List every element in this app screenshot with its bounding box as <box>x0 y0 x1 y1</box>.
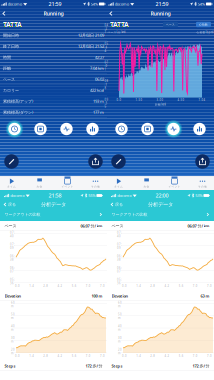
staticText: 07:01 <box>104 61 108 71</box>
staticText: 5.6 <box>72 354 77 358</box>
staticText: 7.0 <box>193 354 198 358</box>
staticText: 60 m <box>118 301 122 308</box>
staticText: 05:36 <box>117 278 122 285</box>
staticText: 開始日時 <box>3 33 19 38</box>
staticText: ワークアウトの比較 <box>111 212 147 217</box>
button[interactable]: タイム <box>0 176 25 190</box>
staticText: 05:44 <box>104 42 108 53</box>
staticText: 07:09 <box>117 243 122 250</box>
staticText: 172 歩/分 <box>192 363 209 368</box>
staticText: 7.04 <box>198 98 205 102</box>
button[interactable]: その他 <box>188 176 214 190</box>
staticText: 4.2 <box>164 284 169 288</box>
button[interactable]: Analysis <box>190 120 208 138</box>
staticText: 距離(km) <box>155 103 166 106</box>
staticText: ペース(分/km) <box>107 30 125 34</box>
staticText: 7.0 <box>100 354 105 358</box>
staticText: ペース <box>3 77 15 82</box>
staticText: 7.0 <box>207 354 212 358</box>
staticText: 0.0 <box>122 284 127 288</box>
button[interactable]: タイム <box>104 176 132 190</box>
button[interactable]: Graph <box>57 120 75 138</box>
staticText: 7.0 <box>86 284 91 288</box>
button[interactable]: Back <box>104 8 117 19</box>
staticText: 422 kcal <box>90 88 104 93</box>
staticText: 54% <box>91 1 98 7</box>
staticText: 大会 <box>143 185 149 188</box>
staticText: 172 歩/分 <box>85 363 102 368</box>
staticText: 07:40 <box>117 231 122 238</box>
staticText: 55% <box>88 193 95 198</box>
staticText: docomo <box>117 193 131 198</box>
button[interactable]: イベント <box>160 176 188 190</box>
staticText: 42:27 <box>95 55 104 60</box>
staticText: 12月02日 21:09 <box>78 33 104 38</box>
staticText: 21:59 <box>156 0 169 8</box>
button[interactable]: 戻る <box>107 199 126 209</box>
staticText: 177 m <box>93 110 104 115</box>
staticText: 0.0 <box>116 98 121 102</box>
staticText: 100 m <box>91 293 102 298</box>
staticText: 1.50 <box>135 98 142 102</box>
button[interactable]: Splits <box>31 120 49 138</box>
staticText: 22:00 <box>156 192 169 199</box>
staticText: 06:07 <box>117 266 122 273</box>
staticText: 60 m <box>11 301 15 308</box>
staticText: 193 m <box>93 99 104 104</box>
button[interactable]: 大会 <box>25 176 53 190</box>
button[interactable]: ワークアウトの比較 <box>0 209 107 219</box>
staticText: 1.4 <box>29 284 34 288</box>
staticText: その他 <box>198 185 207 188</box>
staticText: 1.4 <box>29 354 34 358</box>
button[interactable]: その他 <box>81 176 109 190</box>
staticText: TATTA <box>110 20 129 29</box>
staticText: 大会 <box>36 185 42 188</box>
staticText: 06:02 <box>95 77 104 82</box>
button[interactable]: 戻る <box>0 199 19 209</box>
staticText: 戻る <box>115 202 123 207</box>
button[interactable]: Share <box>88 154 103 169</box>
button[interactable]: Edit <box>4 154 19 169</box>
staticText: 07:09 <box>10 243 15 250</box>
button[interactable]: 大会 <box>132 176 160 190</box>
staticText: docomo <box>10 193 24 198</box>
staticText: 分析データ <box>148 201 173 208</box>
staticText: 40 m <box>11 324 15 332</box>
staticText: 距離 <box>3 66 11 71</box>
staticText: 20 m <box>118 348 122 355</box>
staticText: 時間 <box>3 55 11 60</box>
staticText: 21:58 <box>49 192 62 199</box>
staticText: 63 m <box>200 293 209 298</box>
button[interactable]: Edit <box>111 154 126 169</box>
staticText: 20 m <box>11 348 15 355</box>
staticText: 4.2 <box>57 284 62 288</box>
button[interactable]: イベント <box>53 176 81 190</box>
button[interactable]: Share <box>195 154 210 169</box>
staticText: 7.04 km <box>90 66 104 71</box>
staticText: 7.0 <box>193 284 198 288</box>
staticText: 0.0 <box>122 354 127 358</box>
staticText: 06:38 <box>10 254 15 262</box>
staticText: 分析データ <box>41 201 66 208</box>
button[interactable]: 心拍数 <box>196 22 211 27</box>
button[interactable]: Graph <box>164 120 182 138</box>
staticText: TATTA <box>3 20 22 29</box>
staticText: 2.8 <box>150 354 155 358</box>
button[interactable]: Back <box>0 8 10 19</box>
button[interactable]: Analysis <box>83 120 101 138</box>
staticText: 50 m <box>118 313 122 320</box>
button[interactable]: Summary <box>5 120 23 138</box>
staticText: 30 m <box>118 336 122 343</box>
button[interactable]: ワークアウトの比較 <box>107 209 214 219</box>
staticText: 5.6 <box>179 354 184 358</box>
button[interactable]: ペース <box>163 22 178 27</box>
staticText: 40 m <box>118 324 122 332</box>
staticText: 4.2 <box>164 354 169 358</box>
staticText: Steps <box>4 363 15 368</box>
staticText: 4.2 <box>57 354 62 358</box>
staticText: 0.0 <box>15 284 20 288</box>
button[interactable]: Summary <box>112 120 130 138</box>
staticText: docomo <box>8 1 22 7</box>
button[interactable]: Splits <box>138 120 156 138</box>
staticText: 54% <box>198 1 205 7</box>
